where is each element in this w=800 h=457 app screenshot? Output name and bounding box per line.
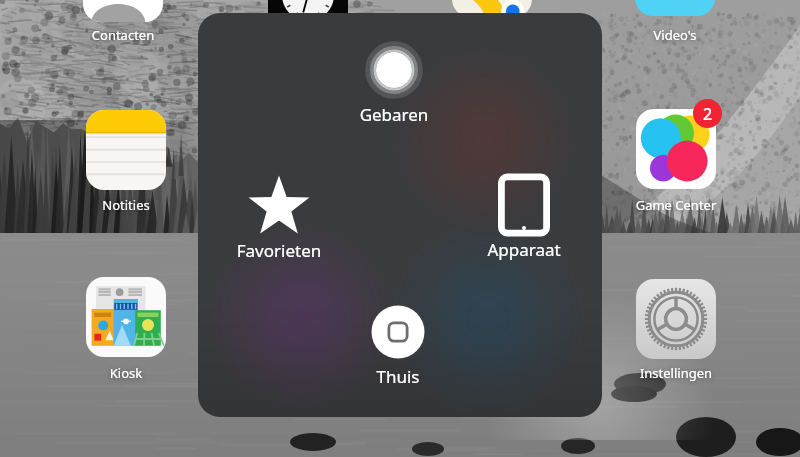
staticText: Gebaren (332, 103, 456, 417)
staticText: Game Center (601, 196, 751, 457)
staticText: Instellingen (601, 364, 751, 457)
button[interactable]: Contacten (76, 0, 170, 46)
staticText: Video's (600, 26, 750, 457)
button[interactable]: Gebaren (332, 36, 456, 417)
button[interactable]: Video's (628, 0, 722, 46)
button[interactable]: Thuis (336, 298, 460, 417)
button[interactable]: Klok (261, 0, 355, 35)
button[interactable]: Apparaat (462, 171, 586, 417)
button[interactable]: Game Center (629, 109, 723, 216)
staticText: Thuis (336, 365, 460, 417)
button[interactable]: Instellingen (629, 279, 723, 384)
staticText: Notities (51, 196, 201, 457)
staticText: Kiosk (51, 364, 201, 457)
button[interactable]: Favorieten (217, 172, 341, 417)
button[interactable]: Notities (79, 110, 173, 216)
staticText: Contacten (48, 26, 198, 457)
staticText: Apparaat (462, 238, 586, 417)
staticText: 2 (703, 103, 713, 125)
button[interactable]: Kaarten (445, 0, 539, 17)
button[interactable]: Kiosk (79, 277, 173, 384)
staticText: Favorieten (217, 239, 341, 417)
